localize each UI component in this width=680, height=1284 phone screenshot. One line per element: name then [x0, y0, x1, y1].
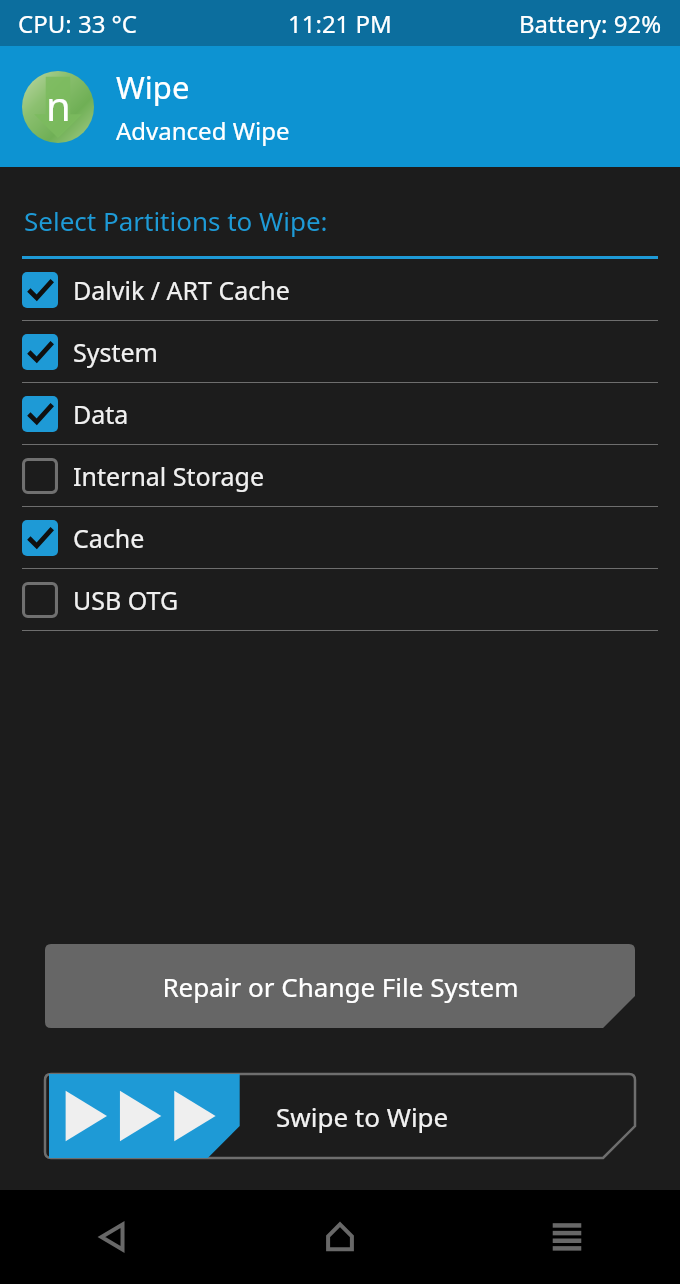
staticText: Internal Storage: [73, 459, 265, 493]
staticText: Repair or Change File System: [162, 969, 519, 1004]
staticText: n: [46, 78, 71, 132]
button[interactable]: Dalvik / ART Cache: [0, 259, 680, 321]
staticText: Select Partitions to Wipe:: [24, 203, 328, 238]
button[interactable]: Home: [226, 1190, 453, 1284]
staticText: Advanced Wipe: [116, 114, 290, 147]
button[interactable]: Data: [0, 383, 680, 445]
staticText: Battery: 92%: [519, 7, 662, 40]
staticText: System: [73, 335, 158, 369]
button[interactable]: Internal Storage: [0, 445, 680, 507]
button[interactable]: Menu: [453, 1190, 680, 1284]
staticText: Dalvik / ART Cache: [73, 273, 290, 307]
staticText: 11:21 PM: [288, 7, 392, 40]
button[interactable]: Repair or Change File System: [45, 944, 635, 1028]
button[interactable]: n: [0, 46, 680, 167]
staticText: Wipe: [116, 66, 190, 108]
staticText: Data: [73, 397, 129, 431]
button[interactable]: System: [0, 321, 680, 383]
staticText: Cache: [73, 521, 145, 555]
staticText: CPU: 33 °C: [18, 7, 138, 40]
staticText: USB OTG: [73, 583, 179, 617]
button[interactable]: USB OTG: [0, 569, 680, 631]
button[interactable]: Cache: [0, 507, 680, 569]
button[interactable]: Swipe to Wipe: [45, 1074, 635, 1158]
button[interactable]: Back: [0, 1190, 226, 1284]
staticText: Swipe to Wipe: [276, 1099, 449, 1134]
